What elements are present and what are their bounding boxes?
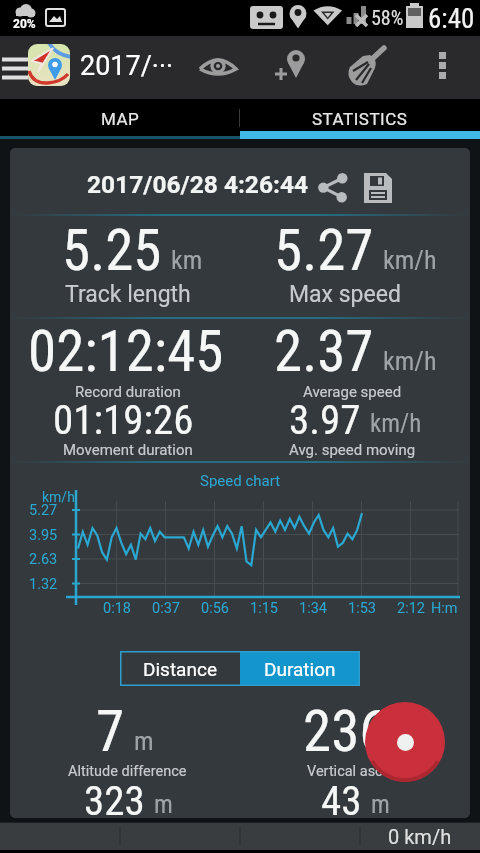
staticText: 2.37 xyxy=(274,318,374,378)
staticText: Vertical ascent xyxy=(307,763,404,780)
button[interactable] xyxy=(356,165,400,209)
staticText: m xyxy=(397,726,417,756)
staticText: Average speed xyxy=(303,383,402,401)
staticText: 236 xyxy=(303,698,388,758)
staticText: 0:56 xyxy=(201,600,229,617)
staticText: 1:15 xyxy=(250,600,278,617)
staticText: Speed chart xyxy=(200,472,281,488)
staticText: m xyxy=(371,790,390,818)
staticText: MAP xyxy=(101,109,140,129)
staticText: 43 xyxy=(321,777,362,818)
staticText: m xyxy=(134,726,154,756)
staticText: 0:37 xyxy=(152,600,180,617)
staticText: 3.95 xyxy=(29,527,58,544)
staticText: 0:18 xyxy=(103,600,131,617)
staticText: Max speed xyxy=(289,281,401,308)
staticText: m xyxy=(154,790,173,818)
staticText: H:m xyxy=(431,600,458,617)
staticText: Altitude difference xyxy=(68,763,187,780)
staticText: 2:12 xyxy=(397,600,425,617)
staticText: Avg. speed moving xyxy=(289,441,416,459)
staticText: 01:19:26 xyxy=(53,396,194,440)
button[interactable] xyxy=(0,44,40,92)
staticText: Record duration xyxy=(75,383,181,401)
button[interactable]: Duration xyxy=(240,651,360,686)
button[interactable] xyxy=(28,44,70,86)
staticText: 6:40 xyxy=(428,3,475,32)
staticText: 5.27 xyxy=(29,502,58,519)
staticText: Distance xyxy=(143,658,217,680)
staticText: km/h xyxy=(42,489,75,505)
staticText: 5.27 xyxy=(274,217,374,277)
staticText: Movement duration xyxy=(63,441,193,459)
staticText: km/h xyxy=(370,409,422,438)
staticText: 323 xyxy=(84,777,145,818)
button[interactable] xyxy=(365,702,445,782)
button[interactable] xyxy=(342,42,394,92)
staticText: km xyxy=(171,245,203,275)
staticText: 2.63 xyxy=(29,551,58,568)
staticText: km/h xyxy=(383,245,437,275)
staticText: 3.97 xyxy=(289,396,361,440)
staticText: 5.25 xyxy=(62,217,162,277)
staticText: 1:34 xyxy=(299,600,327,617)
staticText: 02:12:45 xyxy=(28,318,224,378)
staticText: Duration xyxy=(264,658,336,680)
staticText: 1.32 xyxy=(29,576,58,593)
button[interactable] xyxy=(270,42,318,92)
staticText: STATISTICS xyxy=(312,109,408,129)
staticText: 1:53 xyxy=(348,600,376,617)
button[interactable] xyxy=(428,44,464,90)
button[interactable] xyxy=(196,44,240,90)
staticText: 7 xyxy=(96,698,125,758)
staticText: 2017/··· xyxy=(80,50,173,80)
button[interactable] xyxy=(308,168,352,212)
button[interactable]: Distance xyxy=(120,651,240,686)
button[interactable]: STATISTICS xyxy=(240,99,480,139)
staticText: 0 km/h xyxy=(388,825,452,848)
staticText: km/h xyxy=(383,346,437,376)
button[interactable]: MAP xyxy=(0,99,240,139)
staticText: 58% xyxy=(371,6,404,28)
staticText: Track length xyxy=(65,281,191,308)
staticText: 2017/06/28 4:26:44 xyxy=(87,170,308,199)
staticText: 20% xyxy=(13,17,36,31)
